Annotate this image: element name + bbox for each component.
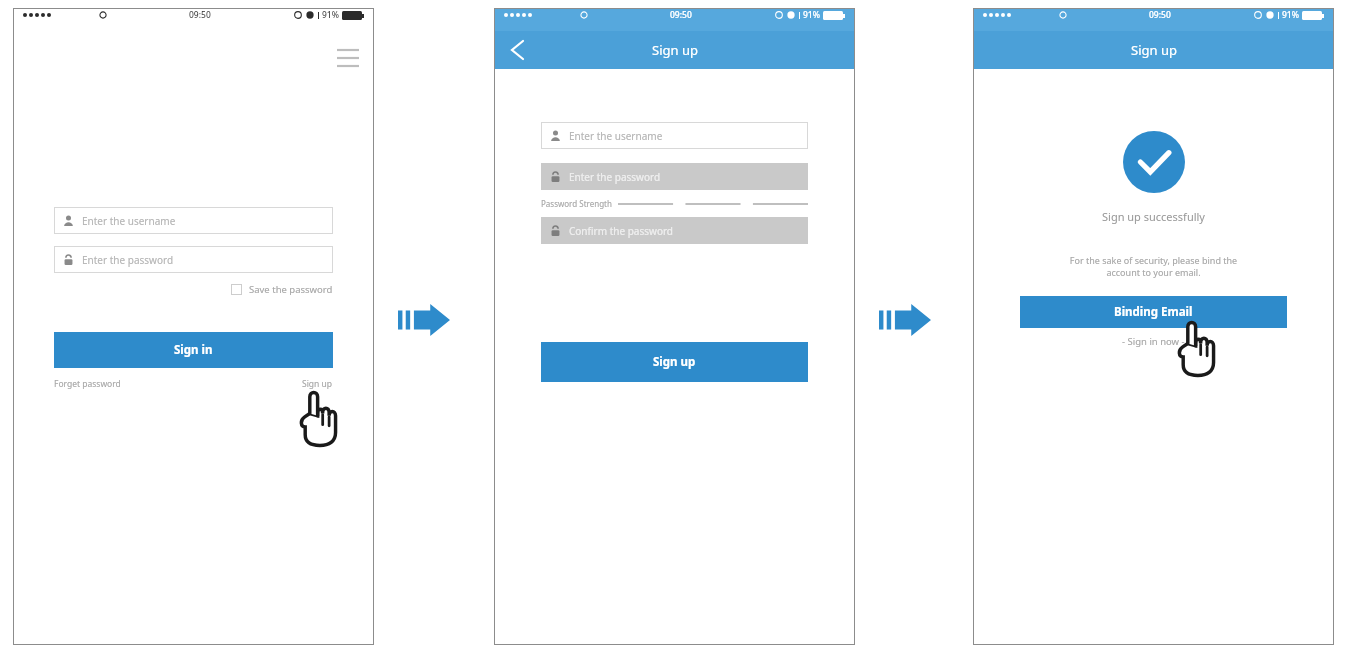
staticText: Sign in (174, 342, 213, 358)
button[interactable]: Confirm the password (541, 217, 808, 244)
button[interactable]: Enter the password (54, 246, 333, 273)
button[interactable]: Back (501, 34, 533, 66)
button[interactable]: Enter the password (541, 163, 808, 190)
button[interactable]: Forget password (54, 378, 121, 390)
button[interactable]: Binding Email (1020, 296, 1287, 328)
staticText: Forget password (54, 378, 121, 390)
staticText: - Sign in now - (1122, 335, 1185, 348)
staticText: Binding Email (1114, 304, 1193, 320)
button[interactable]: - Sign in now - (1122, 335, 1185, 348)
button[interactable]: Menu (333, 43, 363, 73)
staticText: Sign up (1131, 41, 1177, 59)
staticText: Save the password (249, 283, 333, 296)
staticText: 91% (1282, 9, 1299, 21)
staticText: Sign up (652, 41, 698, 59)
button[interactable]: Enter the username (54, 207, 333, 234)
staticText: 91% (322, 9, 339, 21)
staticText: 09:50 (189, 9, 211, 21)
staticText: Enter the username (82, 214, 176, 228)
staticText: Sign up (302, 378, 333, 390)
staticText: 91% (803, 9, 820, 21)
staticText: Sign up (653, 354, 696, 370)
staticText: Password Strength (541, 198, 612, 209)
staticText: Confirm the password (569, 224, 674, 238)
button[interactable]: Sign in (54, 332, 333, 368)
staticText: Enter the password (569, 170, 661, 184)
button[interactable]: Sign up (302, 378, 333, 390)
button[interactable]: Enter the username (541, 122, 808, 149)
button[interactable]: Sign up (541, 342, 808, 382)
staticText: 09:50 (670, 9, 692, 21)
button[interactable]: Save the password (54, 283, 333, 296)
staticText: Enter the password (82, 253, 174, 267)
staticText: Enter the username (569, 129, 663, 143)
staticText: For the sake of security, please bind th… (1020, 254, 1287, 278)
staticText: 09:50 (1149, 9, 1171, 21)
staticText: Sign up successfully (1102, 209, 1205, 224)
